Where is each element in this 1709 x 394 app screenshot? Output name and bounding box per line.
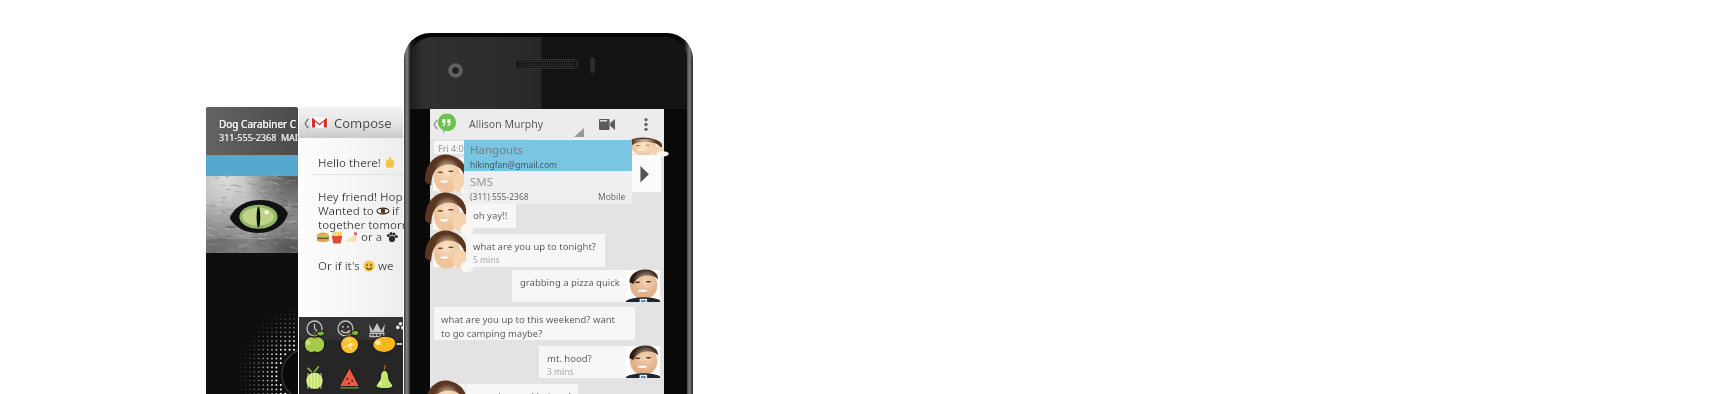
button[interactable]: Contact avatar: [626, 270, 660, 302]
staticText: Allison Murphy: [469, 117, 544, 131]
staticText: SMS: [470, 174, 494, 190]
button[interactable]: Hangouts: [464, 140, 632, 171]
button[interactable]: what are you up to tonight?: [466, 234, 605, 267]
staticText: Wanted to: [318, 203, 377, 219]
button[interactable]: Allison Murphy avatar: [433, 234, 465, 267]
staticText: 5 mins: [473, 254, 500, 266]
button[interactable]: Video call: [595, 112, 619, 136]
button[interactable]: Gmail: [310, 113, 329, 132]
button[interactable]: sounds great! let's go!: [466, 384, 578, 394]
staticText: to go camping maybe?: [441, 327, 543, 340]
staticText: or a: [358, 229, 386, 245]
button[interactable]: what are you up to this weekend? want: [434, 307, 635, 340]
staticText: Dog Carabiner C: [219, 117, 297, 131]
button[interactable]: More categories: [396, 322, 405, 331]
staticText: 311-555-2368 MAIN: [219, 131, 298, 143]
staticText: Or if it's: [318, 258, 363, 274]
staticText: Compose: [334, 114, 392, 132]
button[interactable]: More options: [634, 112, 658, 136]
button[interactable]: Contact avatar: [626, 346, 660, 378]
button[interactable]: [466, 158, 586, 191]
button[interactable]: mt. hood?: [539, 346, 626, 378]
button[interactable]: Allison Murphy avatar: [433, 384, 465, 394]
button[interactable]: Allison Murphy avatar: [433, 158, 465, 191]
staticText: Mobile: [598, 191, 626, 203]
button[interactable]: Allison Murphy avatar: [433, 196, 465, 230]
staticText: sounds great! let's go!: [473, 390, 572, 394]
button[interactable]: Back: [302, 113, 310, 133]
staticText: we: [375, 258, 397, 274]
staticText: if: [389, 203, 399, 219]
staticText: hikingfan@gmail.com: [470, 159, 558, 171]
staticText: mt. hood?: [547, 352, 592, 365]
staticText: what are you up to tonight?: [473, 240, 596, 253]
button[interactable]: grabbing a pizza quick: [512, 270, 626, 302]
staticText: Hey friend! Hop: [318, 189, 403, 205]
button[interactable]: oh yay!!: [466, 203, 516, 228]
staticText: Hello there!: [318, 155, 381, 171]
button[interactable]: SMS: [464, 171, 632, 204]
button[interactable]: Smileys: [337, 320, 354, 337]
staticText: grabbing a pizza quick: [520, 276, 620, 289]
button[interactable]: Objects: [368, 320, 386, 338]
staticText: Fri 4:0: [438, 142, 464, 154]
staticText: oh yay!!: [473, 209, 508, 222]
button[interactable]: Back to Hangouts: [431, 109, 459, 139]
staticText: (311) 555-2368: [470, 191, 529, 203]
staticText: 3 mins: [547, 366, 574, 378]
staticText: what are you up to this weekend? want: [441, 313, 616, 326]
staticText: together tomorr: [318, 217, 407, 233]
staticText: Hangouts: [470, 142, 523, 158]
button[interactable]: Recent: [306, 320, 323, 337]
